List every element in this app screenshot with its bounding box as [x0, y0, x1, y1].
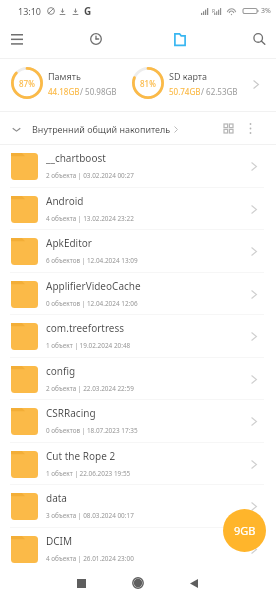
- staticText: 0 объектов | 18.07.2023 17:35: [46, 426, 138, 435]
- staticText: config: [46, 364, 76, 378]
- staticText: 2 объекта | 03.02.2024 00:27: [46, 171, 134, 180]
- button[interactable]: Files: [166, 25, 194, 53]
- staticText: 87%: [19, 78, 35, 89]
- staticText: DCIM: [46, 534, 73, 548]
- staticText: 9GB: [234, 523, 256, 538]
- button[interactable]: data: [0, 485, 276, 528]
- button[interactable]: config: [0, 358, 276, 400]
- staticText: / 50.98GB: [80, 86, 117, 97]
- button[interactable]: More options: [237, 115, 263, 141]
- button[interactable]: ApkEditor: [0, 230, 276, 273]
- staticText: 3%: [261, 6, 271, 16]
- staticText: 0 объектов | 12.04.2024 12:06: [46, 299, 138, 308]
- button[interactable]: Menu: [3, 25, 31, 53]
- staticText: 2 объекта | 22.03.2024 22:59: [46, 384, 134, 393]
- button[interactable]: Grid view: [202, 115, 228, 141]
- staticText: / 62.53GB: [201, 86, 238, 97]
- button[interactable]: 87%: [11, 67, 117, 99]
- button[interactable]: Android: [0, 188, 276, 230]
- staticText: SD карта: [169, 70, 208, 82]
- button[interactable]: Home: [114, 566, 162, 600]
- staticText: 1 объект | 19.02.2024 20:48: [46, 341, 131, 350]
- button[interactable]: ApplifierVideoCache: [0, 273, 276, 315]
- button[interactable]: DCIM: [0, 528, 276, 570]
- staticText: 4 объекта | 26.01.2024 23:00: [46, 554, 134, 563]
- staticText: 13:10: [18, 5, 42, 17]
- button[interactable]: __chartboost: [0, 145, 276, 188]
- button[interactable]: CSRRacing: [0, 400, 276, 443]
- button[interactable]: 81%: [132, 67, 238, 99]
- staticText: ApplifierVideoCache: [46, 279, 141, 293]
- button[interactable]: Back: [170, 566, 218, 600]
- button[interactable]: com.treefortress: [0, 315, 276, 358]
- button[interactable]: Внутренний общий накопитель: [12, 123, 178, 135]
- staticText: Cut the Rope 2: [46, 449, 116, 463]
- staticText: 81%: [140, 78, 156, 89]
- button[interactable]: Recents: [57, 566, 105, 600]
- button[interactable]: Recent files: [82, 25, 110, 53]
- button[interactable]: Cut the Rope 2: [0, 443, 276, 485]
- staticText: 6 объектов | 12.04.2024 13:09: [46, 256, 138, 265]
- staticText: Внутренний общий накопитель: [32, 123, 171, 135]
- staticText: G: [84, 4, 92, 18]
- staticText: data: [46, 491, 67, 505]
- staticText: ApkEditor: [46, 236, 92, 250]
- staticText: 50.74GB: [169, 86, 201, 97]
- staticText: 4 объекта | 13.02.2024 23:22: [46, 214, 134, 223]
- staticText: Память: [48, 70, 81, 82]
- staticText: Android: [46, 194, 84, 208]
- staticText: 44.18GB: [48, 86, 80, 97]
- staticText: 1 объект | 22.06.2023 19:55: [46, 469, 131, 478]
- staticText: __chartboost: [46, 151, 106, 165]
- staticText: 3 объекта | 08.03.2024 00:17: [46, 511, 134, 520]
- button[interactable]: 9GB: [223, 509, 266, 552]
- button[interactable]: Search: [245, 25, 273, 53]
- staticText: R: [212, 8, 216, 15]
- staticText: com.treefortress: [46, 321, 125, 335]
- staticText: CSRRacing: [46, 406, 96, 420]
